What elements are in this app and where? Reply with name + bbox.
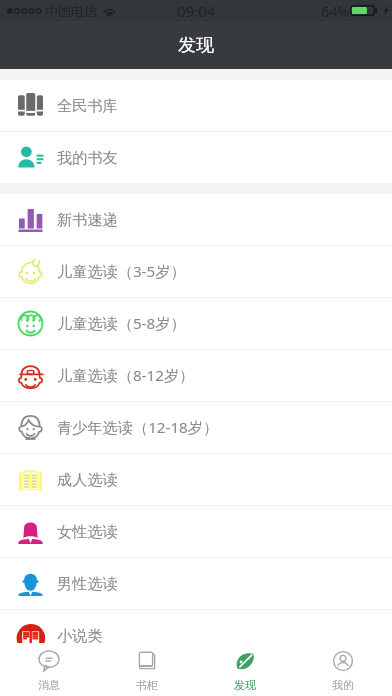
- button[interactable]: 青少年选读（12-18岁）: [0, 402, 392, 453]
- button[interactable]: 消息: [0, 643, 98, 696]
- button[interactable]: 成人选读: [0, 454, 392, 505]
- button[interactable]: 全民书库: [0, 80, 392, 131]
- staticText: 发现: [234, 678, 256, 692]
- button[interactable]: 我的书友: [0, 132, 392, 183]
- button[interactable]: 小说类: [0, 610, 392, 661]
- staticText: 小说类: [57, 626, 103, 645]
- staticText: 中国电信: [45, 3, 97, 19]
- button[interactable]: 发现: [196, 643, 294, 696]
- staticText: 我的: [332, 678, 354, 692]
- button[interactable]: 儿童选读（3-5岁）: [0, 246, 392, 297]
- button[interactable]: 儿童选读（5-8岁）: [0, 298, 392, 349]
- button[interactable]: 儿童选读（8-12岁）: [0, 350, 392, 401]
- staticText: 全民书库: [57, 96, 118, 115]
- staticText: 成人选读: [57, 470, 118, 489]
- button[interactable]: 新书速递: [0, 194, 392, 245]
- staticText: 我的书友: [57, 148, 118, 167]
- staticText: 青少年选读（12-18岁）: [57, 417, 219, 438]
- button[interactable]: 我的: [294, 643, 392, 696]
- staticText: 女性选读: [57, 522, 118, 541]
- staticText: 书柜: [136, 678, 158, 692]
- staticText: 09:04: [177, 1, 216, 21]
- staticText: 儿童选读（8-12岁）: [57, 365, 195, 386]
- staticText: 新书速递: [57, 210, 118, 229]
- staticText: 儿童选读（3-5岁）: [57, 261, 186, 282]
- button[interactable]: 书柜: [98, 643, 196, 696]
- staticText: 儿童选读（5-8岁）: [57, 313, 186, 334]
- button[interactable]: 男性选读: [0, 558, 392, 609]
- staticText: 发现: [178, 34, 214, 57]
- staticText: 男性选读: [57, 574, 118, 593]
- staticText: 消息: [38, 678, 60, 692]
- button[interactable]: 女性选读: [0, 506, 392, 557]
- staticText: 64%: [321, 1, 350, 21]
